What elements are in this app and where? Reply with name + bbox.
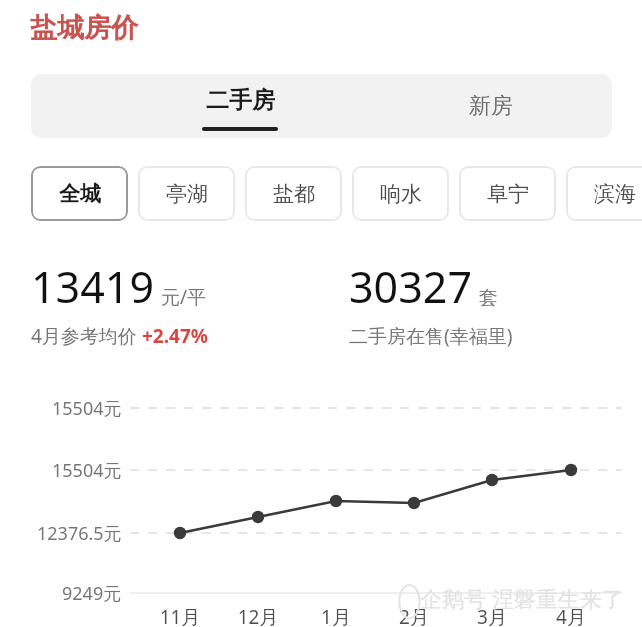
button[interactable]: 响水 — [352, 166, 449, 221]
button[interactable]: 全城 — [31, 166, 128, 221]
staticText: 阜宁 — [487, 181, 529, 207]
staticText: 新房 — [469, 92, 513, 120]
staticText: 全城 — [59, 181, 101, 207]
button[interactable]: 新房 — [430, 74, 552, 138]
staticText: 企鹅号 涅磐重生来了 — [420, 583, 624, 613]
staticText: 盐城房价 — [30, 11, 138, 45]
staticText: 12376.5元 — [37, 521, 122, 546]
staticText: 滨海 — [594, 181, 636, 207]
staticText: 15504元 — [52, 396, 122, 421]
staticText: 2月 — [374, 604, 454, 627]
button[interactable]: 盐都 — [245, 166, 342, 221]
staticText: 12月 — [218, 604, 298, 627]
staticText: 13419 — [31, 257, 154, 316]
staticText: 4月参考均价 — [31, 323, 142, 349]
staticText: 30327 — [349, 257, 472, 316]
staticText: 响水 — [380, 181, 422, 207]
staticText: 11月 — [140, 604, 220, 627]
button[interactable]: 滨海 — [566, 166, 642, 221]
staticText: 1月 — [296, 604, 376, 627]
staticText: 3月 — [452, 604, 532, 627]
staticText: 盐都 — [273, 181, 315, 207]
button[interactable]: 阜宁 — [459, 166, 556, 221]
staticText: 二手房在售(幸福里) — [349, 323, 513, 349]
staticText: 15504元 — [52, 458, 122, 483]
staticText: 套 — [479, 286, 498, 310]
button[interactable]: 亭湖 — [138, 166, 235, 221]
staticText: 二手房 — [206, 86, 275, 115]
staticText: 元/平 — [161, 284, 207, 310]
staticText: 4月 — [531, 604, 611, 627]
staticText: 9249元 — [62, 581, 122, 606]
staticText: +2.47% — [142, 323, 208, 349]
other: Watermark logo — [396, 585, 424, 621]
button[interactable]: 二手房 — [172, 74, 308, 138]
staticText: 亭湖 — [166, 181, 208, 207]
